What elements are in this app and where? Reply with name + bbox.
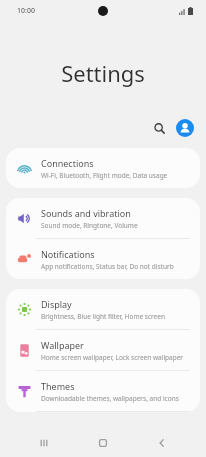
staticText: Wallpaper: [41, 339, 84, 351]
staticText: Sound mode, Ringtone, Volume: [41, 221, 138, 230]
button[interactable]: Notifications: [6, 239, 200, 279]
button[interactable]: Display: [6, 289, 200, 329]
staticText: Connections: [41, 157, 94, 169]
staticText: App notifications, Status bar, Do not di…: [41, 262, 174, 271]
staticText: 10:00: [17, 6, 35, 16]
button[interactable]: Search: [148, 117, 170, 139]
button[interactable]: Recents: [29, 429, 59, 457]
button[interactable]: Themes: [6, 371, 200, 411]
staticText: Settings: [0, 58, 206, 88]
staticText: Display: [41, 298, 72, 310]
staticText: Notifications: [41, 248, 95, 260]
button[interactable]: Account: [176, 119, 194, 137]
staticText: Downloadable themes, wallpapers, and ico…: [41, 394, 179, 403]
staticText: Brightness, Blue light filter, Home scre…: [41, 312, 165, 321]
button[interactable]: Back: [147, 429, 177, 457]
staticText: Wi-Fi, Bluetooth, Flight mode, Data usag…: [41, 171, 168, 180]
button[interactable]: Wallpaper: [6, 330, 200, 370]
button[interactable]: Sounds and vibration: [6, 198, 200, 238]
staticText: Home screen wallpaper, Lock screen wallp…: [41, 353, 184, 362]
staticText: Sounds and vibration: [41, 207, 131, 219]
button[interactable]: Home: [88, 429, 118, 457]
button[interactable]: Connections: [6, 148, 200, 188]
staticText: Themes: [41, 380, 75, 392]
